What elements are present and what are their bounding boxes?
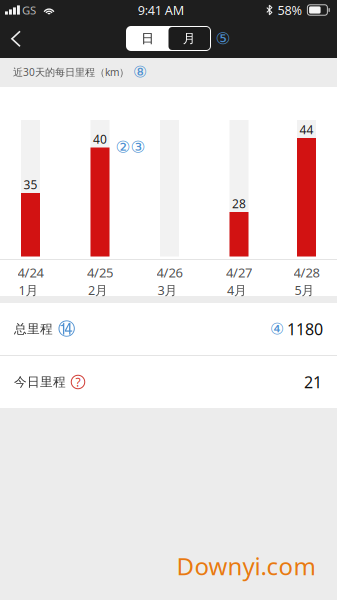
staticText: 4/28 bbox=[293, 264, 319, 281]
staticText: ? bbox=[75, 374, 80, 390]
staticText: 总里程 bbox=[14, 321, 53, 337]
staticText: 58% bbox=[277, 1, 302, 19]
staticText: GS bbox=[22, 2, 36, 18]
staticText: 4/27 bbox=[226, 264, 252, 281]
staticText: ⑤ bbox=[215, 29, 230, 48]
staticText: 日 bbox=[141, 30, 154, 46]
staticText: 3月 bbox=[157, 281, 177, 299]
button[interactable]: 今日里程 bbox=[0, 356, 337, 408]
button[interactable]: 月 bbox=[168, 27, 210, 50]
staticText: 4月 bbox=[227, 281, 247, 299]
staticText: 4/26 bbox=[156, 264, 182, 281]
staticText: Downyi.com bbox=[176, 550, 315, 582]
staticText: 28 bbox=[232, 195, 246, 212]
staticText: 9:41 AM bbox=[138, 1, 184, 19]
staticText: 今日里程 bbox=[14, 374, 66, 390]
staticText: 2月 bbox=[88, 281, 108, 299]
button[interactable]: 日 bbox=[127, 27, 168, 50]
button[interactable]: Back bbox=[0, 20, 32, 58]
staticText: ② bbox=[115, 137, 130, 157]
staticText: ③ bbox=[130, 137, 145, 157]
staticText: ⑧ bbox=[133, 63, 147, 81]
staticText: ⑭ bbox=[58, 318, 75, 340]
staticText: 近30天的每日里程（km） bbox=[13, 65, 129, 79]
staticText: 35 bbox=[23, 176, 37, 193]
staticText: ④ bbox=[270, 320, 284, 338]
staticText: 4/25 bbox=[87, 264, 113, 281]
staticText: 5月 bbox=[294, 281, 314, 299]
button[interactable]: 总里程 bbox=[0, 303, 337, 355]
staticText: 21 bbox=[304, 371, 322, 393]
staticText: 1月 bbox=[18, 281, 38, 299]
staticText: 44 bbox=[299, 121, 313, 138]
staticText: 1180 bbox=[287, 318, 323, 340]
staticText: 4/24 bbox=[17, 264, 43, 281]
staticText: 月 bbox=[183, 30, 196, 46]
staticText: 40 bbox=[93, 131, 107, 147]
